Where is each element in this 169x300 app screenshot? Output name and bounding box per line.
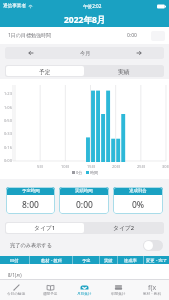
staticText: 今月 (80, 50, 91, 57)
staticText: タイプ2 (113, 224, 135, 232)
staticText: 通信事業者 (3, 3, 26, 9)
staticText: 時間 (90, 170, 98, 175)
staticText: 月別集計 (77, 292, 92, 297)
staticText: 30日 (162, 164, 169, 169)
staticText: 0分 (76, 170, 83, 175)
button[interactable]: 達成割合 (113, 187, 163, 214)
button[interactable]: 月別集計 (67, 280, 101, 300)
staticText: 今日の勉強 (7, 292, 26, 297)
staticText: 5日 (37, 164, 44, 169)
button[interactable]: Show only completed (143, 240, 163, 251)
staticText: 0:00 (76, 199, 93, 211)
button[interactable]: 予定時間 (6, 187, 55, 214)
staticText: 10日 (61, 164, 70, 169)
button[interactable]: タイプ2 (84, 223, 163, 233)
staticText: 0:33 (4, 131, 12, 136)
staticText: 15日 (87, 164, 96, 169)
staticText: 20日 (112, 164, 121, 169)
button[interactable]: 予定 (6, 66, 84, 76)
staticText: 0:16 (4, 145, 12, 150)
staticText: 実績 (104, 258, 113, 263)
staticText: 日付 (10, 258, 19, 263)
staticText: 0:50 (4, 118, 12, 123)
staticText: 週間予定 (43, 292, 58, 297)
staticText: 達成率 (124, 258, 137, 263)
staticText: 予定 (39, 68, 51, 75)
staticText: 達成割合 (129, 188, 147, 194)
staticText: 8/1(月) (8, 272, 22, 278)
button[interactable]: 週間予定 (33, 280, 67, 300)
staticText: f(x) (148, 283, 157, 292)
staticText: 25日 (137, 164, 146, 169)
staticText: 0% (132, 199, 145, 211)
button[interactable]: タイプ1 (6, 223, 84, 233)
staticText: 教材・教科 (143, 292, 161, 297)
staticText: 1日の目標勉強時間 (8, 32, 51, 39)
staticText: 予定 (82, 258, 91, 263)
staticText: 予定時間 (22, 188, 40, 194)
staticText: 午後2:02 (83, 3, 102, 9)
button[interactable]: Next month (113, 47, 164, 59)
button[interactable]: 今日の勉強 (0, 280, 33, 300)
button[interactable]: Previous month (5, 47, 57, 59)
staticText: 2022年8月 (64, 14, 106, 26)
staticText: 実績時間 (75, 188, 93, 194)
staticText: タイプ1 (34, 224, 56, 232)
staticText: 1:23 (4, 91, 12, 96)
staticText: 教材・教科 (41, 258, 62, 263)
staticText: 変更・完了 (146, 258, 167, 263)
staticText: 完了のみ表示する (10, 242, 52, 249)
staticText: 0:00 (4, 158, 12, 163)
staticText: 0:00 (127, 32, 137, 39)
staticText: 実績 (118, 68, 130, 75)
button[interactable]: 年間集計 (101, 280, 135, 300)
button[interactable]: f(x) (135, 280, 169, 300)
button[interactable]: 実績時間 (59, 187, 109, 214)
staticText: 8:00 (22, 199, 39, 211)
button[interactable]: 実績 (84, 66, 163, 76)
staticText: 年間集計 (111, 292, 126, 297)
staticText: 1:06 (4, 105, 12, 110)
button[interactable]: 今月 (57, 47, 113, 59)
